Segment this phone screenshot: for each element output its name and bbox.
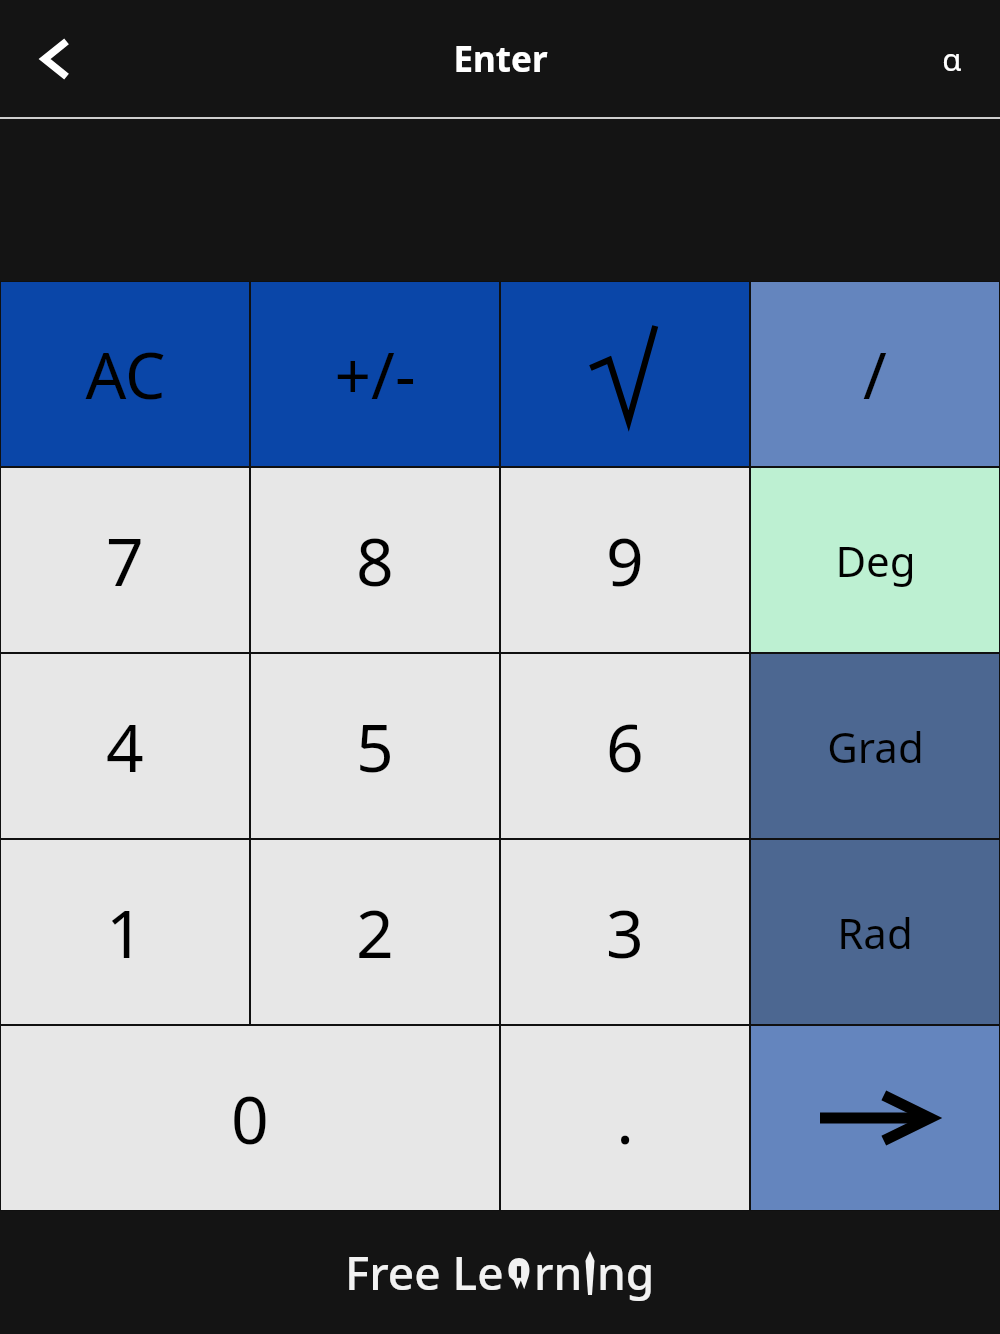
staticText: 5: [356, 701, 394, 791]
button[interactable]: Enter: [751, 1026, 999, 1210]
button[interactable]: Rad: [751, 840, 999, 1024]
button[interactable]: Grad: [751, 654, 999, 838]
staticText: +/-: [334, 331, 416, 418]
staticText: 9: [606, 515, 644, 605]
staticText: Rad: [837, 904, 913, 961]
button[interactable]: 0: [1, 1026, 499, 1210]
staticText: 3: [606, 887, 644, 977]
staticText: Free Le: [345, 1241, 504, 1304]
staticText: 0: [231, 1073, 269, 1163]
button[interactable]: 9: [501, 468, 749, 652]
staticText: Deg: [835, 532, 916, 589]
button[interactable]: 5: [251, 654, 499, 838]
button[interactable]: 6: [501, 654, 749, 838]
button[interactable]: /: [751, 282, 999, 466]
button[interactable]: 4: [1, 654, 249, 838]
staticText: AC: [85, 331, 166, 418]
staticText: 4: [106, 701, 144, 791]
staticText: 2: [356, 887, 394, 977]
staticText: 6: [606, 701, 644, 791]
staticText: 1: [106, 887, 144, 977]
button[interactable]: +/-: [251, 282, 499, 466]
button[interactable]: 7: [1, 468, 249, 652]
staticText: α: [942, 38, 962, 80]
button[interactable]: 2: [251, 840, 499, 1024]
button[interactable]: Square root: [501, 282, 749, 466]
button[interactable]: .: [501, 1026, 749, 1210]
staticText: rn: [534, 1241, 583, 1304]
button[interactable]: AC: [1, 282, 249, 466]
staticText: Enter: [453, 35, 548, 83]
button[interactable]: 3: [501, 840, 749, 1024]
button[interactable]: 8: [251, 468, 499, 652]
staticText: Grad: [827, 718, 924, 775]
button[interactable]: Alpha mode: [914, 21, 990, 97]
staticText: ng: [597, 1241, 655, 1304]
button[interactable]: 1: [1, 840, 249, 1024]
staticText: /: [863, 331, 887, 418]
staticText: .: [616, 1073, 634, 1163]
button[interactable]: Deg: [751, 468, 999, 652]
button[interactable]: Back: [18, 21, 94, 97]
staticText: 8: [356, 515, 394, 605]
staticText: 7: [106, 515, 144, 605]
